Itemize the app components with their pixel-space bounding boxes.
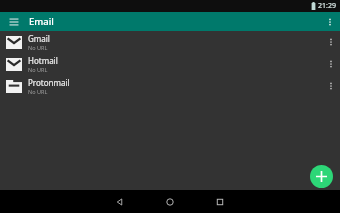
- button[interactable]: Back: [107, 190, 133, 213]
- staticText: 21:29: [318, 1, 336, 11]
- staticText: Email: [29, 15, 54, 28]
- staticText: No URL: [28, 66, 48, 73]
- staticText: Hotmail: [28, 55, 58, 66]
- button[interactable]: Hotmail: [0, 53, 340, 75]
- staticText: No URL: [28, 88, 48, 95]
- button[interactable]: Home: [157, 190, 183, 213]
- button[interactable]: Add: [310, 165, 333, 188]
- button[interactable]: Open navigation drawer: [7, 15, 21, 29]
- staticText: Gmail: [28, 33, 50, 44]
- staticText: No URL: [28, 44, 48, 51]
- button[interactable]: More options: [324, 16, 336, 28]
- button[interactable]: More options for Hotmail: [325, 58, 337, 70]
- button[interactable]: Recent apps: [207, 190, 233, 213]
- button[interactable]: More options for Protonmail: [325, 80, 337, 92]
- staticText: Protonmail: [28, 77, 70, 88]
- button[interactable]: Gmail: [0, 31, 340, 53]
- button[interactable]: Protonmail: [0, 75, 340, 97]
- button[interactable]: More options for Gmail: [325, 36, 337, 48]
